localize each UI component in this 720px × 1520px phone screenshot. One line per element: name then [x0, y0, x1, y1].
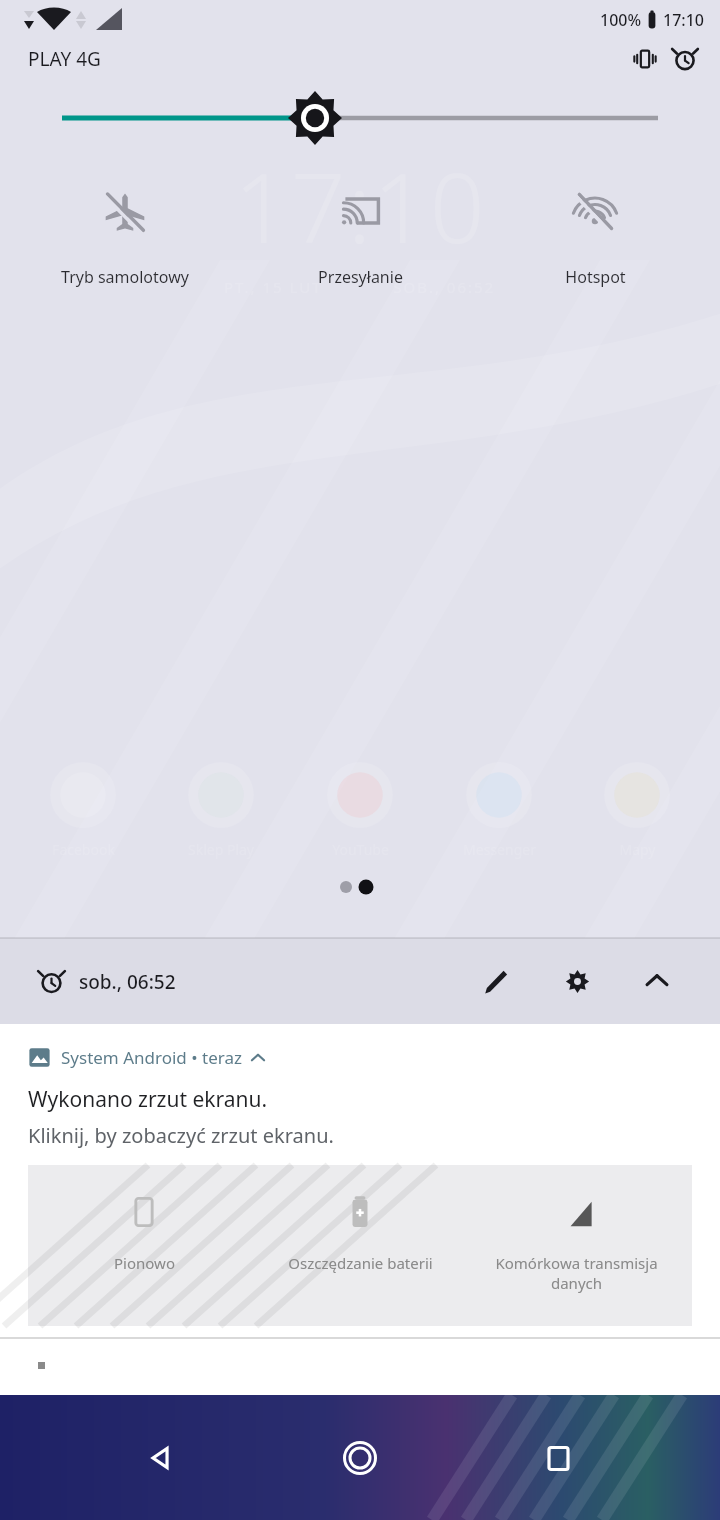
staticText: Wykonano zrzut ekranu.	[28, 1085, 268, 1114]
staticText: System Android • teraz	[61, 1046, 242, 1069]
staticText: PLAY 4G	[28, 46, 101, 72]
staticText: PT., 15 LUT SOB., 06:52	[224, 277, 496, 297]
button[interactable]: Back	[126, 1422, 198, 1494]
staticText: Hotspot	[565, 266, 626, 288]
staticText: Kliknij, by zobaczyć zrzut ekranu.	[28, 1122, 334, 1149]
staticText: sob., 06:52	[79, 969, 176, 995]
button[interactable]: Recents	[522, 1422, 594, 1494]
button[interactable]: System Android • teraz	[28, 1046, 266, 1069]
button[interactable]: Home	[324, 1422, 396, 1494]
button[interactable]: Przesyłanie	[250, 184, 470, 292]
button[interactable]: Edit tiles	[468, 954, 522, 1008]
button[interactable]: Screenshot preview	[28, 1165, 692, 1326]
staticText: Pionowo	[114, 1253, 175, 1273]
staticText: Tryb samolotowy	[61, 266, 189, 288]
staticText: Przesyłanie	[318, 266, 403, 288]
staticText: Komórkowa transmisja danych	[495, 1253, 658, 1293]
button[interactable]: Tryb samolotowy	[15, 184, 235, 292]
button[interactable]: sob., 06:52	[38, 968, 176, 995]
staticText: Oszczędzanie baterii	[288, 1253, 433, 1273]
staticText: 17:10	[663, 9, 704, 31]
button[interactable]: Hotspot	[485, 184, 705, 292]
staticText: 100%	[600, 9, 642, 31]
staticText: 17:10	[234, 140, 487, 271]
button[interactable]: Collapse	[630, 954, 684, 1008]
button[interactable]: Brightness	[0, 94, 720, 142]
button[interactable]: Settings	[550, 954, 604, 1008]
